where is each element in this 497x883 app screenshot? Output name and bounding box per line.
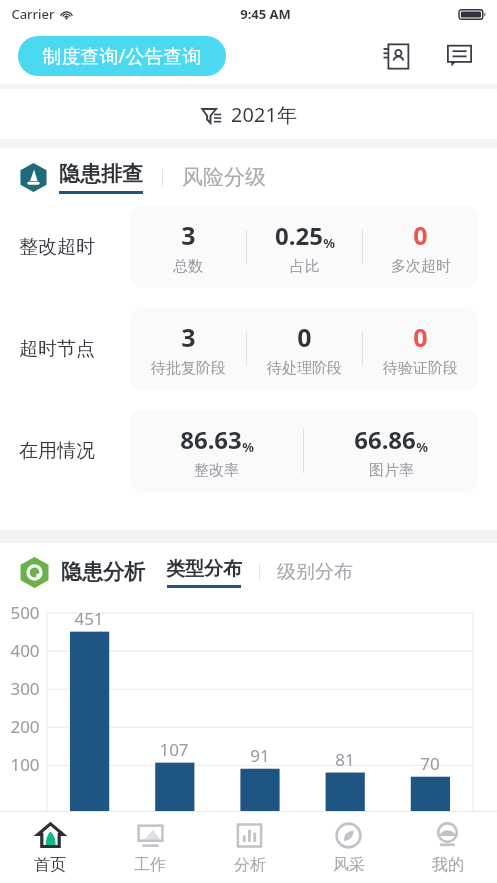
staticText: 100: [10, 753, 40, 776]
button[interactable]: 3: [130, 206, 478, 288]
button[interactable]: 风险分级: [182, 164, 266, 190]
staticText: 91: [250, 744, 270, 767]
staticText: 0: [413, 218, 428, 252]
button[interactable]: 86.63: [130, 410, 478, 492]
staticText: 300: [10, 677, 40, 700]
staticText: 风险分级: [182, 164, 266, 190]
button[interactable]: 2021年: [185, 95, 313, 134]
button[interactable]: 隐患分析: [61, 559, 145, 585]
staticText: 0.25: [275, 219, 323, 252]
staticText: 107: [159, 738, 189, 761]
staticText: %: [242, 438, 254, 456]
staticText: 在用情况: [19, 439, 95, 463]
staticText: 总数: [173, 257, 203, 276]
staticText: 图片率: [369, 461, 414, 480]
button[interactable]: Contacts: [376, 36, 416, 76]
staticText: 隐患分析: [61, 559, 145, 585]
staticText: 0: [297, 320, 312, 354]
staticText: 占比: [290, 257, 320, 276]
button[interactable]: Messages: [439, 36, 479, 76]
staticText: 86.63: [180, 423, 242, 456]
staticText: 70: [420, 752, 440, 775]
staticText: 多次超时: [391, 257, 451, 276]
staticText: 整改率: [194, 461, 239, 480]
staticText: 级别分布: [277, 560, 353, 584]
staticText: 风采: [333, 855, 365, 875]
button[interactable]: 类型分布: [166, 557, 242, 581]
button[interactable]: 分析: [200, 812, 299, 883]
staticText: 待批复阶段: [151, 359, 226, 378]
staticText: 66.86: [354, 423, 416, 456]
staticText: 我的: [432, 855, 464, 875]
staticText: 0: [413, 320, 428, 354]
staticText: 隐患排查: [59, 161, 143, 187]
button[interactable]: 工作: [100, 812, 200, 883]
staticText: 81: [335, 748, 355, 771]
staticText: 首页: [34, 855, 66, 875]
staticText: 工作: [134, 855, 166, 875]
staticText: Carrier: [11, 5, 55, 23]
staticText: 制度查询/公告查询: [42, 43, 202, 69]
button[interactable]: 3: [130, 308, 478, 390]
staticText: 3: [181, 320, 196, 354]
button[interactable]: 隐患排查: [59, 161, 143, 187]
staticText: 9:45 AM: [240, 5, 291, 23]
staticText: 整改超时: [19, 235, 95, 259]
staticText: 待处理阶段: [267, 359, 342, 378]
staticText: 500: [10, 601, 40, 624]
button[interactable]: 首页: [0, 812, 100, 883]
button[interactable]: 风采: [299, 812, 398, 883]
staticText: 400: [10, 639, 40, 662]
staticText: 分析: [234, 855, 266, 875]
staticText: 2021年: [231, 101, 297, 128]
button[interactable]: 我的: [398, 812, 497, 883]
staticText: 200: [10, 715, 40, 738]
staticText: 超时节点: [19, 337, 95, 361]
staticText: 待验证阶段: [383, 359, 458, 378]
button[interactable]: 级别分布: [277, 560, 353, 584]
staticText: 3: [181, 218, 196, 252]
staticText: 451: [74, 607, 104, 630]
button[interactable]: 制度查询/公告查询: [18, 36, 226, 76]
staticText: %: [416, 438, 428, 456]
staticText: 类型分布: [166, 557, 242, 581]
staticText: %: [323, 234, 335, 252]
